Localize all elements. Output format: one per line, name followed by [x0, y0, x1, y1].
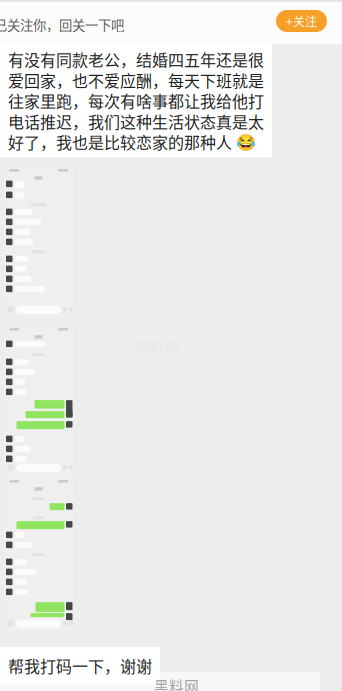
- staticText: 黑料网: [154, 675, 199, 691]
- button[interactable]: +关注: [276, 10, 327, 32]
- staticText: 已关注你，回关一下吧: [0, 15, 124, 34]
- staticText: 帮我打码一下，谢谢: [8, 655, 152, 676]
- staticText: 有没有同款老公，结婚四五年还是很爱回家，也不爱应酬，每天下班就是往家里跑，每次有…: [8, 49, 264, 152]
- staticText: +关注: [286, 12, 317, 30]
